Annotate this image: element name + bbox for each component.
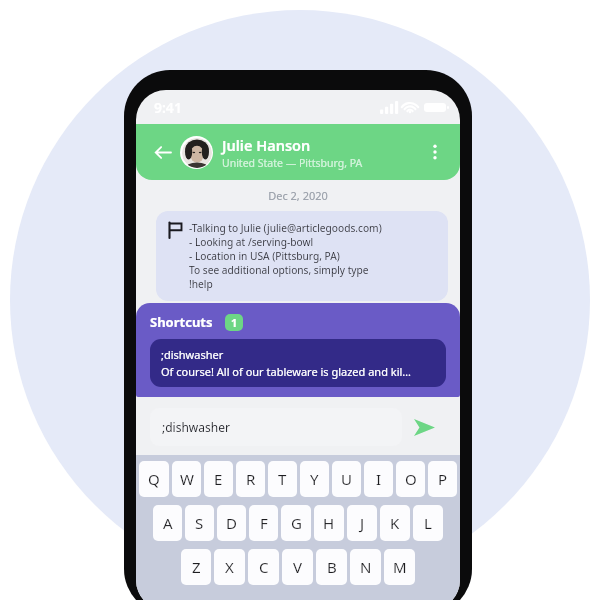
button[interactable]: Y [300, 461, 329, 497]
button[interactable]: Send [402, 405, 446, 449]
staticText: E [214, 469, 223, 489]
staticText: Z [192, 557, 201, 577]
button[interactable]: C [248, 549, 279, 585]
staticText: Y [310, 469, 319, 489]
staticText: J [360, 513, 365, 533]
button[interactable]: ;dishwasher [150, 408, 402, 446]
staticText: United State — Pittsburg, PA [222, 156, 363, 170]
staticText: O [405, 469, 417, 489]
staticText: - Location in USA (Pittsburg, PA) [189, 249, 340, 263]
staticText: R [246, 469, 256, 489]
staticText: Julie Hanson [222, 135, 311, 155]
staticText: 1 [231, 315, 238, 330]
button[interactable]: T [268, 461, 297, 497]
staticText: B [327, 557, 337, 577]
button[interactable]: O [396, 461, 425, 497]
staticText: K [390, 513, 400, 533]
button[interactable]: L [413, 505, 443, 541]
staticText: M [393, 557, 407, 577]
button[interactable]: J [347, 505, 377, 541]
staticText: C [259, 557, 269, 577]
staticText: I [376, 469, 382, 489]
staticText: S [195, 513, 204, 533]
button[interactable]: A [153, 505, 182, 541]
staticText: - Looking at /serving-bowl [189, 235, 314, 249]
staticText: 9:41 [154, 98, 182, 117]
button[interactable]: V [282, 549, 313, 585]
button[interactable]: H [314, 505, 344, 541]
button[interactable]: Q [139, 461, 169, 497]
staticText: U [341, 469, 352, 489]
button[interactable]: F [249, 505, 278, 541]
button[interactable]: P [428, 461, 457, 497]
button[interactable]: W [172, 461, 201, 497]
staticText: G [291, 513, 302, 533]
staticText: A [163, 513, 173, 533]
button[interactable]: More options [422, 139, 448, 165]
staticText: X [225, 557, 234, 577]
staticText: D [226, 513, 237, 533]
staticText: W [180, 469, 194, 489]
staticText: Dec 2, 2020 [136, 188, 460, 203]
staticText: P [438, 469, 448, 489]
button[interactable]: K [380, 505, 410, 541]
button[interactable]: U [332, 461, 361, 497]
staticText: H [323, 513, 335, 533]
button[interactable]: Z [181, 549, 211, 585]
button[interactable]: S [185, 505, 214, 541]
staticText: !help [189, 277, 213, 291]
button[interactable]: D [217, 505, 246, 541]
button[interactable]: I [364, 461, 393, 497]
staticText: Q [148, 469, 160, 489]
button[interactable]: X [214, 549, 245, 585]
button[interactable]: R [236, 461, 265, 497]
staticText: ;dishwasher [161, 347, 224, 362]
button[interactable]: G [281, 505, 311, 541]
button[interactable]: N [350, 549, 381, 585]
button[interactable]: M [384, 549, 415, 585]
staticText: V [293, 557, 303, 577]
staticText: ;dishwasher [162, 419, 230, 435]
button[interactable]: ;dishwasher [150, 339, 446, 387]
staticText: Of course! All of our tableware is glaze… [161, 364, 412, 379]
staticText: T [278, 469, 287, 489]
staticText: -Talking to Julie (julie@articlegoods.co… [189, 221, 382, 235]
staticText: Shortcuts [150, 313, 213, 331]
button[interactable]: Back [148, 138, 176, 166]
button[interactable]: E [204, 461, 233, 497]
button[interactable]: B [316, 549, 347, 585]
staticText: L [424, 513, 432, 533]
staticText: N [360, 557, 372, 577]
staticText: To see additional options, simply type [189, 263, 369, 277]
staticText: F [260, 513, 268, 533]
